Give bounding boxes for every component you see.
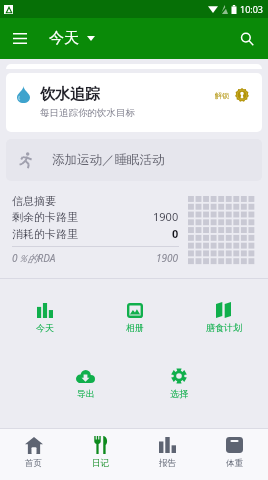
staticText: 10:03 (240, 3, 264, 15)
button[interactable]: 选择 (134, 368, 223, 399)
staticText: 体重 (226, 458, 243, 469)
staticText: 相册 (126, 322, 144, 333)
staticText: 膳食计划 (206, 322, 242, 333)
staticText: 每日追踪你的饮水目标 (40, 107, 135, 119)
staticText: 1900 (156, 251, 179, 265)
staticText: 报告 (159, 458, 176, 469)
staticText: 今天 (36, 322, 54, 333)
staticText: 日记 (92, 458, 109, 469)
button[interactable]: 膳食计划 (179, 302, 268, 333)
staticText: 首页 (25, 458, 42, 469)
staticText: 信息摘要 (12, 194, 56, 208)
button[interactable]: 相册 (90, 302, 179, 333)
button[interactable]: 报告 (134, 429, 201, 480)
staticText: 饮水追踪 (40, 85, 100, 104)
button[interactable]: Search (226, 18, 268, 59)
button[interactable]: 今天 (0, 302, 90, 333)
button[interactable]: 今天 (49, 18, 95, 59)
staticText: 0 (172, 226, 179, 241)
button[interactable]: 体重 (201, 429, 268, 480)
staticText: 1900 (153, 209, 179, 224)
button[interactable]: 导出 (41, 368, 130, 399)
staticText: 添加运动／睡眠活动 (52, 152, 165, 168)
button[interactable]: Menu (0, 18, 40, 59)
button[interactable]: 添加运动／睡眠活动 (6, 139, 262, 181)
staticText: 0％的RDA (12, 251, 56, 265)
staticText: 选择 (170, 388, 188, 399)
staticText: 剩余的卡路里 (12, 210, 78, 224)
staticText: 今天 (49, 29, 79, 48)
button[interactable]: 日记 (67, 429, 134, 480)
staticText: 消耗的卡路里 (12, 227, 78, 241)
button[interactable]: 饮水追踪 (6, 73, 262, 132)
staticText: 解锁 (215, 91, 229, 100)
staticText: 导出 (77, 388, 95, 399)
button[interactable]: 首页 (0, 429, 67, 480)
